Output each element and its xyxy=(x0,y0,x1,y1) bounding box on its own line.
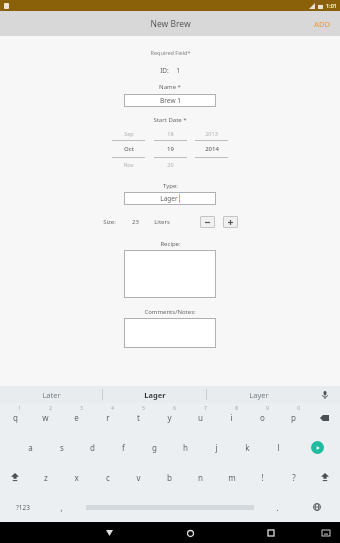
staticText: b xyxy=(167,472,172,483)
button[interactable]: k xyxy=(232,432,263,462)
button[interactable]: 2013 xyxy=(195,130,228,168)
button[interactable]: ADD xyxy=(304,14,340,34)
staticText: ID: xyxy=(160,66,169,75)
button[interactable]: j xyxy=(201,432,232,462)
staticText: 8 xyxy=(235,405,238,411)
button[interactable]: Layer xyxy=(207,386,310,403)
button[interactable]: Increase size xyxy=(223,216,238,228)
staticText: ADD xyxy=(314,19,330,29)
staticText: ?123 xyxy=(16,503,30,512)
staticText: Comments/Notes: xyxy=(144,308,196,316)
staticText: j xyxy=(215,442,218,453)
button[interactable]: , xyxy=(45,492,78,522)
button[interactable]: 9 xyxy=(247,403,278,432)
staticText: n xyxy=(198,472,203,483)
button[interactable]: 6 xyxy=(154,403,185,432)
staticText: 23 xyxy=(132,218,139,226)
staticText: s xyxy=(60,442,64,453)
button[interactable]: 7 xyxy=(185,403,216,432)
button[interactable]: h xyxy=(170,432,201,462)
staticText: Type: xyxy=(163,182,178,190)
staticText: 9 xyxy=(266,405,269,411)
button[interactable]: 0 xyxy=(278,403,309,432)
button[interactable] xyxy=(124,318,216,348)
button[interactable]: z xyxy=(30,462,61,492)
button[interactable]: Sep xyxy=(112,130,145,168)
staticText: t xyxy=(137,412,140,423)
button[interactable]: Home xyxy=(181,524,199,542)
button[interactable]: Space xyxy=(78,492,261,522)
staticText: y xyxy=(167,412,172,423)
staticText: f xyxy=(122,442,125,453)
button[interactable]: Change keyboard xyxy=(294,492,340,522)
button[interactable]: 8 xyxy=(216,403,247,432)
staticText: z xyxy=(44,472,48,483)
button[interactable]: x xyxy=(61,462,92,492)
staticText: p xyxy=(291,412,296,423)
button[interactable]: c xyxy=(92,462,123,492)
staticText: 20 xyxy=(167,161,174,168)
button[interactable]: b xyxy=(154,462,185,492)
staticText: Recipe: xyxy=(160,240,181,248)
staticText: 1:01 xyxy=(326,2,337,9)
button[interactable]: Enter xyxy=(294,432,340,462)
staticText: 2014 xyxy=(205,145,219,153)
button[interactable]: v xyxy=(123,462,154,492)
button[interactable]: n xyxy=(185,462,216,492)
staticText: 4 xyxy=(111,405,114,411)
button[interactable]: Recents xyxy=(262,524,280,542)
staticText: 19 xyxy=(167,145,174,153)
staticText: 0 xyxy=(297,405,300,411)
staticText: d xyxy=(90,442,95,453)
staticText: Nov xyxy=(123,161,134,168)
staticText: Name * xyxy=(159,83,181,91)
staticText: o xyxy=(260,412,265,423)
button[interactable]: 18 xyxy=(154,130,187,168)
button[interactable]: Shift xyxy=(309,462,340,492)
button[interactable]: f xyxy=(108,432,139,462)
staticText: , xyxy=(60,502,63,513)
button[interactable]: m xyxy=(216,462,247,492)
button[interactable]: ? xyxy=(278,462,309,492)
staticText: New Brew xyxy=(150,18,191,30)
staticText: x xyxy=(74,472,79,483)
button[interactable]: 2 xyxy=(30,403,61,432)
button[interactable]: Decrease size xyxy=(200,216,215,228)
button[interactable]: a xyxy=(15,432,46,462)
staticText: w xyxy=(42,412,49,423)
button[interactable]: Voice input xyxy=(310,386,340,403)
staticText: Size: xyxy=(103,218,116,226)
button[interactable]: Lager xyxy=(103,386,206,403)
button[interactable]: s xyxy=(46,432,77,462)
button[interactable]: ! xyxy=(247,462,278,492)
staticText: Sep xyxy=(124,130,134,137)
staticText: h xyxy=(183,442,188,453)
button[interactable]: Later xyxy=(0,386,102,403)
staticText: Later xyxy=(42,390,61,400)
button[interactable] xyxy=(124,250,216,298)
button[interactable]: 1 xyxy=(0,403,30,432)
staticText: u xyxy=(198,412,203,423)
button[interactable]: d xyxy=(77,432,108,462)
button[interactable]: . xyxy=(261,492,294,522)
staticText: r xyxy=(106,412,110,423)
button[interactable]: Back xyxy=(100,524,118,542)
button[interactable]: l xyxy=(263,432,294,462)
staticText: e xyxy=(74,412,79,423)
button[interactable]: ?123 xyxy=(0,492,45,522)
button[interactable]: 5 xyxy=(123,403,154,432)
staticText: 2013 xyxy=(205,130,218,137)
button[interactable]: Brew 1 xyxy=(124,94,216,107)
button[interactable]: Keyboard xyxy=(322,530,330,536)
button[interactable]: g xyxy=(139,432,170,462)
button[interactable]: Lager xyxy=(124,192,216,205)
button[interactable]: 3 xyxy=(61,403,92,432)
staticText: 5 xyxy=(142,405,145,411)
staticText: q xyxy=(13,412,18,423)
staticText: . xyxy=(276,502,279,513)
staticText: Liters xyxy=(154,218,170,226)
button[interactable]: Backspace xyxy=(309,403,340,432)
button[interactable]: Shift xyxy=(0,462,30,492)
button[interactable]: 4 xyxy=(92,403,123,432)
staticText: 6 xyxy=(173,405,176,411)
